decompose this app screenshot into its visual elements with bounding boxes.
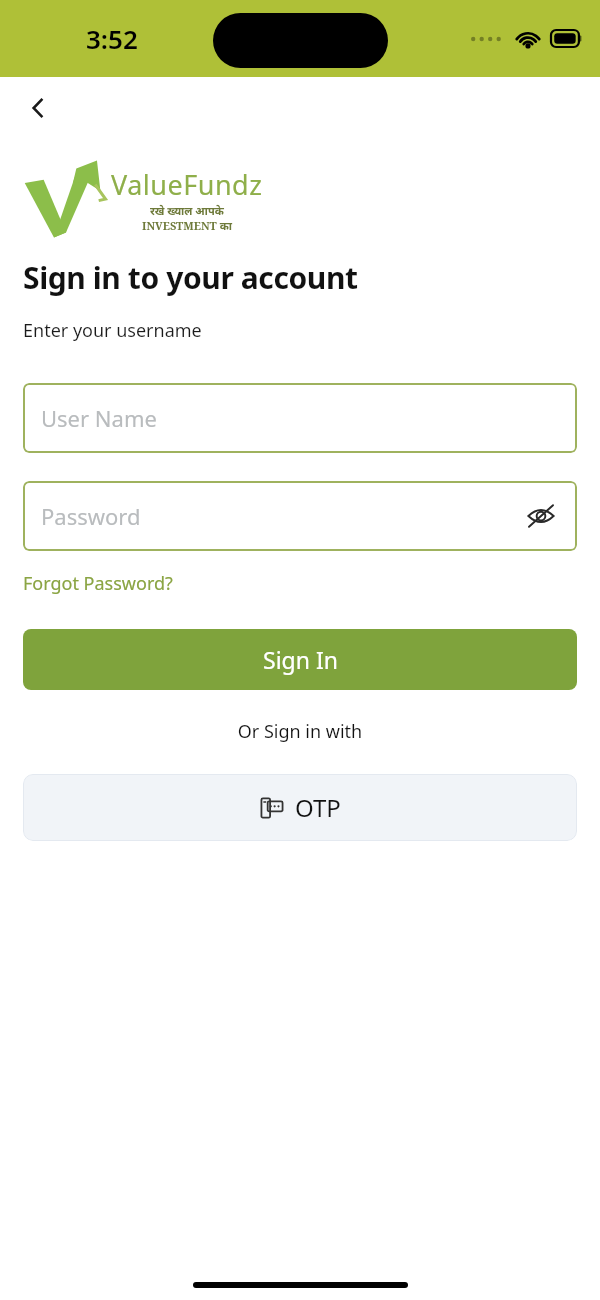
staticText: Sign in to your account: [23, 257, 358, 298]
staticText: रखे ख्याल आपके: [150, 203, 224, 218]
button[interactable]: Password: [23, 481, 577, 551]
staticText: 3:52: [86, 21, 138, 56]
button[interactable]: Forgot Password?: [23, 569, 173, 598]
staticText: Or Sign in with: [23, 719, 577, 744]
button[interactable]: OTP: [23, 774, 577, 841]
button[interactable]: Back: [14, 84, 62, 132]
staticText: User Name: [41, 403, 157, 433]
staticText: Sign In: [263, 644, 338, 675]
staticText: Password: [41, 501, 141, 531]
staticText: Forgot Password?: [23, 571, 173, 596]
button[interactable]: User Name: [23, 383, 577, 453]
staticText: ValueFundz: [111, 166, 263, 203]
staticText: INVESTMENT का: [142, 218, 233, 233]
staticText: Enter your username: [23, 318, 202, 343]
button[interactable]: Sign In: [23, 629, 577, 690]
button[interactable]: Show password: [519, 494, 563, 538]
staticText: OTP: [295, 791, 341, 824]
